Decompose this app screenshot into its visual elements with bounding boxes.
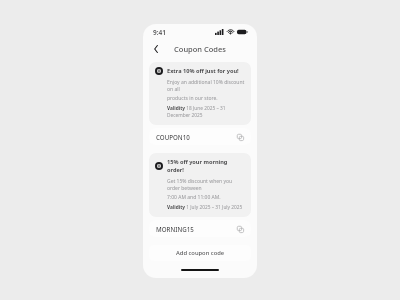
button[interactable]: Copy code [235,224,245,234]
button[interactable]: Copy code [235,132,245,142]
staticText: 15% off your morning order! [167,158,245,174]
staticText: products in our store. [167,95,218,102]
staticText: Enjoy an additional 10% discount on all [167,79,245,93]
button[interactable]: Extra 10% off just for you! [149,62,251,125]
staticText: MORNING15 [156,225,194,233]
staticText: Add coupon code [176,249,225,257]
staticText: Validity 18 June 2025 – 31 December 2025 [167,105,245,119]
staticText: Get 15% discount when you order between [167,178,245,192]
staticText: COUPON10 [156,133,190,141]
staticText: 9:41 [153,28,166,37]
staticText: 7:00 AM and 11:00 AM. [167,194,221,201]
staticText: Validity 1 July 2025 – 31 July 2025 [167,204,243,211]
staticText: Extra 10% off just for you! [167,67,239,75]
button[interactable]: MORNING15 [149,220,251,237]
button[interactable]: Back [149,42,163,56]
staticText: Coupon Codes [174,44,226,54]
button[interactable]: Add coupon code [149,245,251,261]
button[interactable]: 15% off your morning order! [149,153,251,217]
button[interactable]: COUPON10 [149,128,251,145]
